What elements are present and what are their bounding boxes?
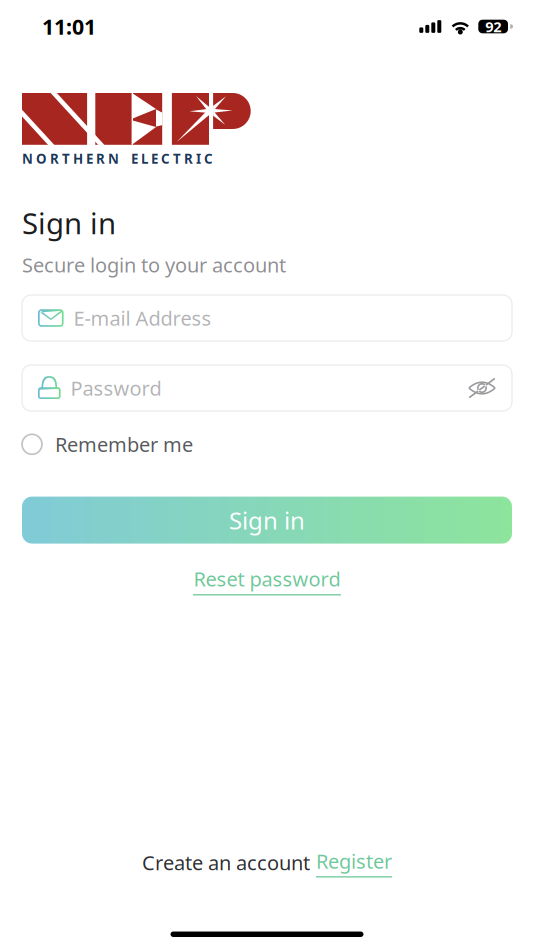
staticText: E-mail Address: [74, 305, 212, 331]
staticText: 92: [485, 17, 501, 36]
staticText: Register: [316, 848, 392, 874]
staticText: N O R T H E R N E L E C T R I C: [22, 150, 213, 167]
button[interactable]: Remember me: [22, 424, 193, 465]
staticText: 11:01: [42, 12, 96, 41]
button[interactable]: Sign in: [22, 497, 512, 544]
staticText: Remember me: [55, 431, 193, 458]
staticText: Password: [71, 375, 162, 401]
staticText: Sign in: [229, 504, 305, 536]
button[interactable]: Reset password: [22, 566, 512, 595]
staticText: Create an account: [142, 849, 310, 876]
staticText: Reset password: [193, 566, 340, 592]
button[interactable]: Register: [316, 848, 392, 877]
staticText: Secure login to your account: [22, 251, 286, 278]
staticText: Sign in: [22, 203, 116, 242]
button[interactable]: Show password: [468, 377, 496, 399]
